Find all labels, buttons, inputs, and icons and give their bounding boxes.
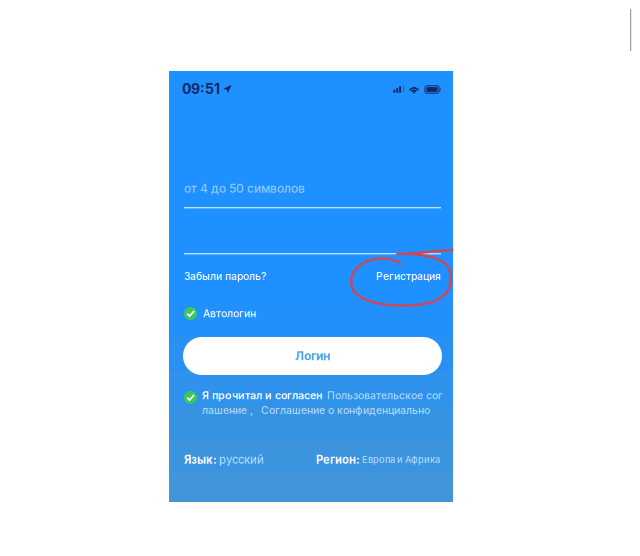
staticText: Пользовательское сог xyxy=(327,389,443,402)
staticText: Европа и Африка xyxy=(362,454,440,465)
staticText: Логин xyxy=(295,349,330,363)
staticText: Автологин xyxy=(203,307,256,320)
button[interactable]: Логин xyxy=(183,337,442,375)
button[interactable]: Регион: xyxy=(316,453,440,467)
button[interactable]: Забыли пароль? xyxy=(184,270,266,282)
staticText: лашение , xyxy=(202,404,253,416)
button[interactable]: Автологин xyxy=(184,307,256,320)
staticText: от 4 до 50 символов xyxy=(184,181,305,195)
staticText: русский xyxy=(219,453,264,467)
staticText: 09:51 xyxy=(182,80,220,97)
staticText: Регион: xyxy=(316,453,360,467)
staticText: Соглашение о конфиденциально xyxy=(261,404,430,416)
staticText: Я прочитал и согласен xyxy=(202,389,323,402)
staticText: Забыли пароль? xyxy=(184,270,266,282)
button[interactable]: Язык: xyxy=(184,453,264,467)
staticText: Язык: xyxy=(184,453,217,467)
staticText: Регистрация xyxy=(376,270,441,282)
button[interactable]: Я прочитал и согласен xyxy=(184,389,441,416)
button[interactable]: Регистрация xyxy=(376,270,441,282)
